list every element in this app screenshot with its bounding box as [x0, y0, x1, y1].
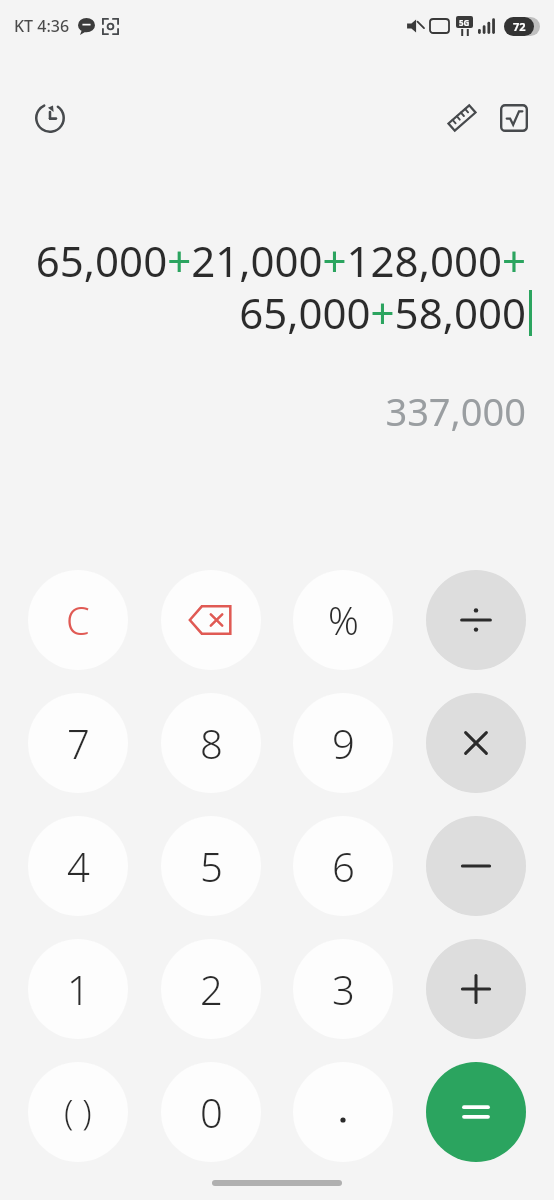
- button[interactable]: 2: [161, 939, 261, 1039]
- staticText: 337,000: [22, 385, 526, 437]
- button[interactable]: Backspace: [161, 570, 261, 670]
- staticText: 9: [332, 716, 355, 770]
- staticText: 3: [332, 962, 355, 1016]
- staticText: 65,000+21,000+128,000+65,000+58,000: [22, 232, 526, 341]
- button[interactable]: 9: [293, 693, 393, 793]
- button[interactable]: 6: [293, 816, 393, 916]
- button[interactable]: %: [293, 570, 393, 670]
- staticText: 8: [200, 716, 223, 770]
- staticText: 5: [200, 839, 223, 893]
- button[interactable]: 4: [28, 816, 128, 916]
- button[interactable]: Minus: [426, 816, 526, 916]
- button[interactable]: 5: [161, 816, 261, 916]
- staticText: KT 4:36: [14, 15, 70, 37]
- button[interactable]: 0: [161, 1062, 261, 1162]
- button[interactable]: Divide: [426, 570, 526, 670]
- staticText: 0: [200, 1085, 223, 1139]
- staticText: C: [66, 594, 90, 646]
- button[interactable]: ( ): [28, 1062, 128, 1162]
- button[interactable]: Equals: [426, 1062, 526, 1162]
- staticText: 6: [332, 839, 355, 893]
- staticText: 72: [513, 19, 526, 34]
- button[interactable]: Multiply: [426, 693, 526, 793]
- button[interactable]: Scientific calculator: [488, 92, 540, 144]
- button[interactable]: Plus: [426, 939, 526, 1039]
- button[interactable]: C: [28, 570, 128, 670]
- button[interactable]: 3: [293, 939, 393, 1039]
- button[interactable]: History: [24, 92, 76, 144]
- staticText: 1: [67, 962, 90, 1016]
- staticText: ( ): [64, 1089, 92, 1135]
- staticText: 4: [67, 839, 90, 893]
- button[interactable]: Decimal point: [293, 1062, 393, 1162]
- button[interactable]: Unit converter: [436, 92, 488, 144]
- staticText: 2: [200, 962, 223, 1016]
- staticText: 5G: [459, 17, 470, 28]
- button[interactable]: 8: [161, 693, 261, 793]
- staticText: 7: [67, 716, 90, 770]
- button[interactable]: 7: [28, 693, 128, 793]
- staticText: %: [328, 594, 359, 646]
- button[interactable]: 1: [28, 939, 128, 1039]
